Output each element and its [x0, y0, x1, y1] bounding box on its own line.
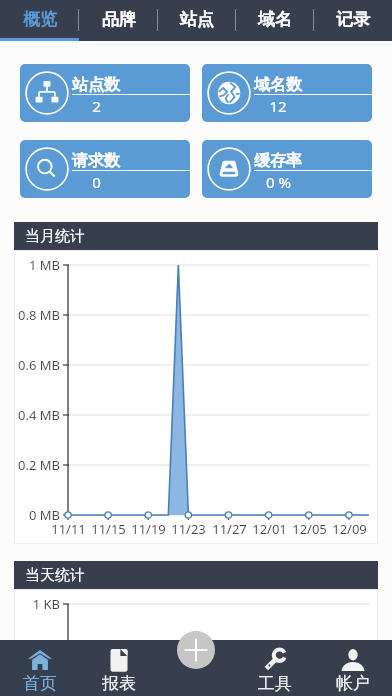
staticText: 首页	[23, 673, 57, 694]
staticText: 12/09	[332, 520, 367, 538]
staticText: 报表	[102, 673, 136, 694]
button[interactable]: 帐户	[314, 640, 392, 696]
button[interactable]: 域名数	[202, 64, 372, 122]
staticText: 12/01	[252, 520, 287, 538]
button[interactable]: 站点数	[20, 64, 190, 122]
staticText: 缓存率	[254, 151, 302, 171]
staticText: 11/19	[131, 520, 166, 538]
staticText: 12	[269, 96, 287, 116]
button[interactable]: 缓存率	[202, 140, 372, 198]
button[interactable]: 站点	[158, 0, 236, 41]
staticText: 记录	[336, 9, 370, 30]
staticText: 2	[92, 96, 101, 116]
button[interactable]: 首页	[0, 640, 79, 696]
button[interactable]: 工具	[236, 640, 314, 696]
button[interactable]: 记录	[314, 0, 392, 41]
staticText: 概览	[23, 9, 57, 30]
staticText: 域名	[258, 9, 292, 30]
staticText: 0.6 MB	[18, 356, 60, 374]
button[interactable]: Add	[177, 631, 215, 669]
staticText: 1 MB	[28, 256, 60, 274]
staticText: 当月统计	[25, 227, 85, 246]
staticText: 11/15	[91, 520, 126, 538]
staticText: 0 %	[266, 172, 291, 192]
staticText: 帐户	[336, 673, 370, 694]
button[interactable]: 请求数	[20, 140, 190, 198]
staticText: 11/11	[51, 520, 86, 538]
staticText: 1 KB	[32, 595, 60, 613]
staticText: 0.2 MB	[18, 456, 60, 474]
staticText: 0.8 MB	[18, 306, 60, 324]
staticText: 域名数	[254, 75, 302, 95]
button[interactable]: 品牌	[79, 0, 158, 41]
button[interactable]: 概览	[0, 0, 79, 41]
staticText: 11/23	[171, 520, 206, 538]
staticText: 0	[92, 172, 101, 192]
staticText: 品牌	[102, 9, 136, 30]
staticText: 当天统计	[25, 566, 85, 585]
staticText: 12/05	[292, 520, 327, 538]
staticText: 站点数	[72, 75, 120, 95]
staticText: 工具	[258, 673, 292, 694]
staticText: 请求数	[72, 151, 120, 171]
button[interactable]: 报表	[79, 640, 158, 696]
staticText: 站点	[180, 9, 214, 30]
staticText: 0 MB	[28, 506, 60, 524]
staticText: 0.4 MB	[18, 406, 60, 424]
staticText: 11/27	[212, 520, 247, 538]
button[interactable]: 域名	[236, 0, 314, 41]
